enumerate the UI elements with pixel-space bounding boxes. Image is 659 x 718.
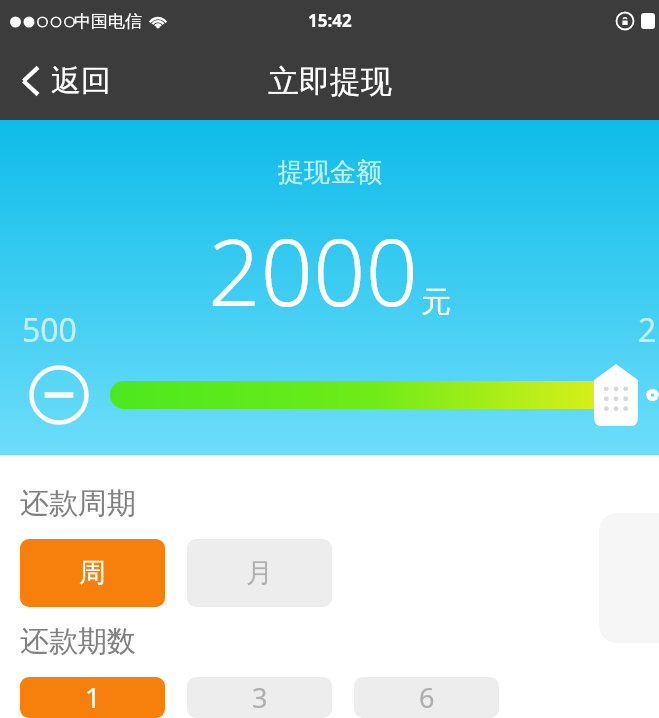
staticText: 2000 xyxy=(208,208,419,333)
button[interactable]: 返回 xyxy=(0,54,125,108)
staticText: 立即提现 xyxy=(268,62,392,101)
button[interactable]: 1 xyxy=(20,677,165,718)
button[interactable]: Increase amount xyxy=(646,365,659,425)
staticText: 中国电信 xyxy=(74,11,142,32)
staticText: 月 xyxy=(246,556,273,590)
staticText: 3 xyxy=(252,679,268,716)
staticText: 元 xyxy=(421,283,451,321)
button[interactable]: 6 xyxy=(354,677,499,718)
staticText: 1 xyxy=(85,679,101,716)
staticText: 6 xyxy=(419,679,435,716)
staticText: 15:42 xyxy=(308,9,352,32)
button[interactable] xyxy=(110,381,633,409)
staticText: 2 xyxy=(638,308,657,352)
staticText: 还款周期 xyxy=(20,485,136,522)
button[interactable]: Amount slider handle xyxy=(594,364,638,426)
staticText: 500 xyxy=(22,308,77,352)
button[interactable]: Decrease amount xyxy=(29,365,89,425)
button[interactable]: 月 xyxy=(187,539,332,607)
staticText: 提现金额 xyxy=(278,156,382,189)
staticText: 还款期数 xyxy=(20,623,136,660)
staticText: 返回 xyxy=(51,62,111,100)
staticText: 周 xyxy=(79,556,106,590)
button[interactable]: 周 xyxy=(20,539,165,607)
button[interactable]: 3 xyxy=(187,677,332,718)
